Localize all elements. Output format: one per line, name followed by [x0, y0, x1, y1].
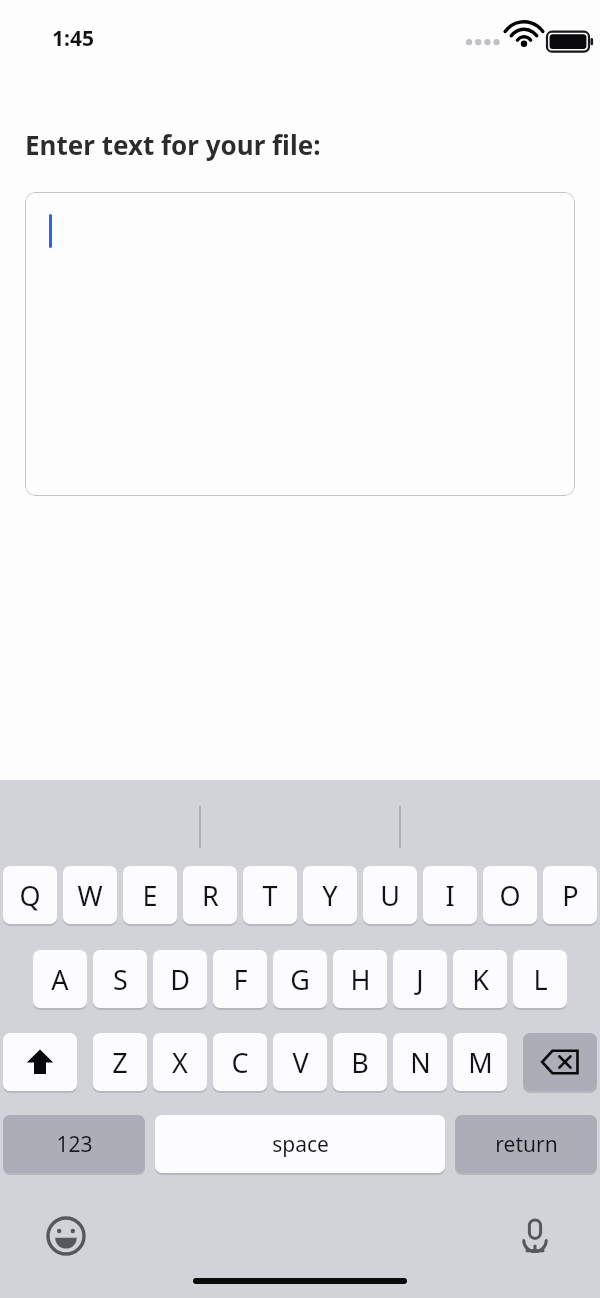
button[interactable] — [25, 192, 575, 496]
button[interactable]: X — [153, 1033, 207, 1091]
staticText: D — [170, 961, 190, 998]
staticText: L — [533, 961, 548, 998]
button[interactable]: A — [33, 950, 87, 1008]
staticText: H — [350, 961, 371, 998]
button[interactable]: U — [363, 866, 417, 924]
button[interactable]: O — [483, 866, 537, 924]
button[interactable]: Dictation — [509, 1210, 561, 1262]
button[interactable]: Shift — [3, 1033, 77, 1091]
button[interactable]: C — [213, 1033, 267, 1091]
button[interactable]: Q — [3, 866, 57, 924]
button[interactable]: M — [453, 1033, 507, 1091]
staticText: V — [292, 1044, 309, 1081]
staticText: M — [468, 1044, 493, 1081]
button[interactable]: T — [243, 866, 297, 924]
staticText: C — [231, 1044, 249, 1081]
button[interactable]: G — [273, 950, 327, 1008]
staticText: W — [77, 877, 103, 914]
staticText: E — [142, 877, 158, 914]
button[interactable]: space — [155, 1115, 445, 1173]
button[interactable]: H — [333, 950, 387, 1008]
staticText: O — [499, 877, 521, 914]
button[interactable]: Z — [93, 1033, 147, 1091]
staticText: U — [380, 877, 400, 914]
staticText: Q — [19, 877, 41, 914]
button[interactable]: P — [543, 866, 597, 924]
button[interactable]: J — [393, 950, 447, 1008]
staticText: 123 — [56, 1130, 93, 1159]
staticText: N — [410, 1044, 431, 1081]
staticText: R — [202, 877, 219, 914]
staticText: return — [495, 1130, 558, 1159]
button[interactable]: F — [213, 950, 267, 1008]
staticText: S — [113, 961, 128, 998]
button[interactable]: 123 — [3, 1115, 145, 1173]
button[interactable]: return — [455, 1115, 597, 1173]
staticText: Y — [322, 877, 338, 914]
button[interactable]: Y — [303, 866, 357, 924]
button[interactable]: R — [183, 866, 237, 924]
button[interactable]: I — [423, 866, 477, 924]
button[interactable]: L — [513, 950, 567, 1008]
staticText: F — [233, 961, 248, 998]
staticText: Enter text for your file: — [25, 127, 321, 162]
button[interactable]: V — [273, 1033, 327, 1091]
button[interactable]: S — [93, 950, 147, 1008]
button[interactable]: D — [153, 950, 207, 1008]
staticText: K — [472, 961, 489, 998]
button[interactable]: N — [393, 1033, 447, 1091]
button[interactable]: B — [333, 1033, 387, 1091]
staticText: P — [562, 877, 579, 914]
staticText: A — [51, 961, 69, 998]
staticText: J — [416, 961, 424, 998]
staticText: X — [172, 1044, 188, 1081]
button[interactable]: K — [453, 950, 507, 1008]
staticText: space — [272, 1130, 329, 1159]
button[interactable]: W — [63, 866, 117, 924]
button[interactable]: Backspace — [523, 1033, 597, 1091]
staticText: I — [445, 877, 455, 914]
staticText: Z — [112, 1044, 128, 1081]
staticText: G — [290, 961, 310, 998]
staticText: 1:45 — [52, 24, 94, 53]
staticText: T — [262, 877, 278, 914]
button[interactable]: Emoji keyboard — [40, 1210, 92, 1262]
button[interactable]: E — [123, 866, 177, 924]
staticText: B — [351, 1044, 369, 1081]
